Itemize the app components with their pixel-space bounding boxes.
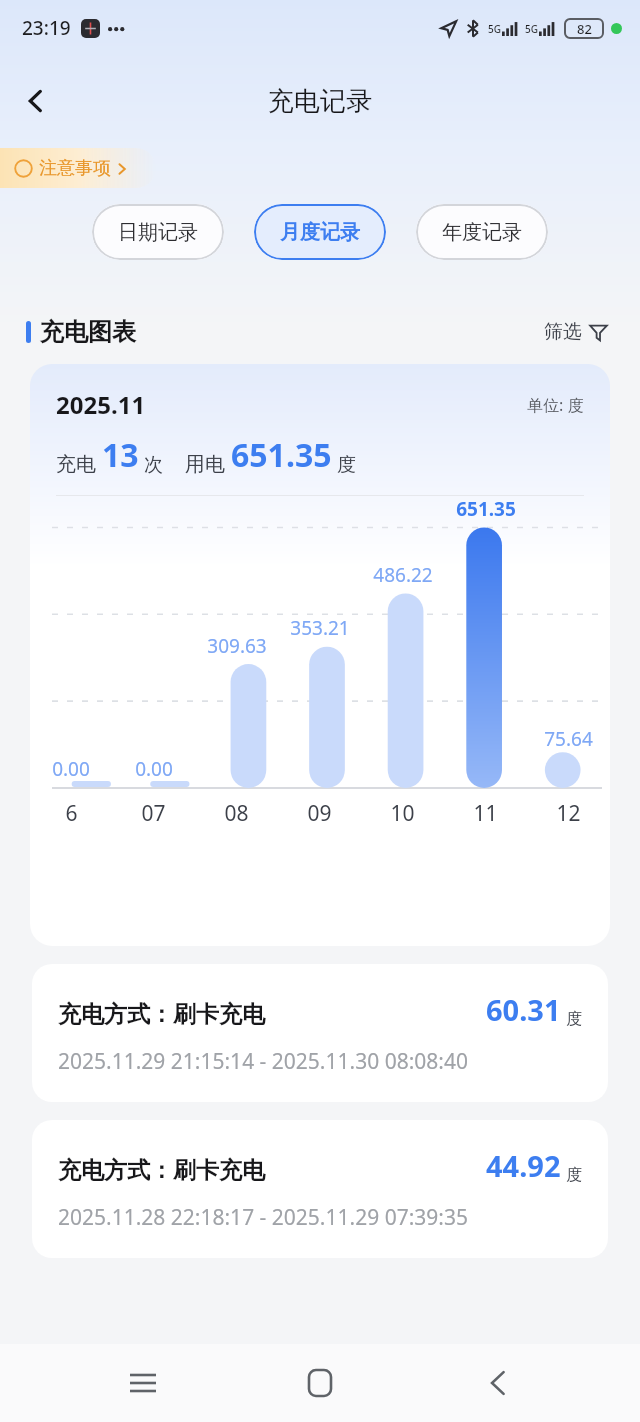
staticText: 充电方式：刷卡充电 (58, 1000, 265, 1029)
staticText: 309.63 (207, 633, 267, 659)
staticText: 2025.11.29 21:15:14 - 2025.11.30 08:08:4… (58, 1047, 468, 1076)
button[interactable]: Home (285, 1348, 355, 1418)
staticText: 充电方式：刷卡充电 (58, 1156, 265, 1185)
staticText: 度 (566, 1009, 582, 1029)
staticText: 单位: 度 (527, 394, 584, 416)
staticText: 注意事项 (39, 157, 111, 180)
staticText: 度 (337, 453, 356, 477)
staticText: 60.31 (486, 990, 561, 1029)
staticText: 6 (65, 799, 78, 828)
staticText: 353.21 (290, 615, 350, 641)
staticText: 2025.11.28 22:18:17 - 2025.11.29 07:39:3… (58, 1203, 468, 1232)
button[interactable]: 日期记录 (92, 204, 224, 260)
staticText: 度 (566, 1165, 582, 1185)
button[interactable]: 年度记录 (416, 204, 548, 260)
button[interactable]: Back (463, 1348, 533, 1418)
button[interactable]: Back (8, 73, 64, 129)
staticText: 0.00 (135, 756, 173, 782)
staticText: 筛选 (544, 320, 582, 344)
staticText: 年度记录 (442, 220, 522, 245)
staticText: 5G (525, 22, 538, 36)
staticText: 486.22 (373, 562, 433, 588)
staticText: 82 (577, 20, 592, 38)
button[interactable]: 充电方式：刷卡充电 (32, 964, 608, 1102)
staticText: 44.92 (486, 1146, 561, 1185)
staticText: 75.64 (544, 726, 593, 752)
staticText: 09 (307, 799, 332, 828)
staticText: 07 (141, 799, 166, 828)
staticText: 月度记录 (280, 220, 360, 245)
button[interactable]: 注意事项 (0, 148, 156, 188)
button[interactable]: Recent apps (108, 1348, 178, 1418)
staticText: 充电记录 (268, 85, 372, 118)
staticText: 12 (556, 799, 581, 828)
staticText: 0.00 (52, 756, 90, 782)
staticText: 5G (488, 22, 501, 36)
staticText: 651.35 (456, 496, 516, 522)
staticText: 用电 (185, 452, 225, 477)
staticText: 日期记录 (118, 220, 198, 245)
staticText: 2025.11 (56, 388, 146, 421)
staticText: 充电图表 (40, 317, 136, 347)
staticText: 23:19 (22, 15, 71, 41)
button[interactable]: 充电方式：刷卡充电 (32, 1120, 608, 1258)
staticText: 次 (144, 453, 163, 477)
staticText: 10 (390, 799, 415, 828)
button[interactable]: 2025.11 (30, 364, 610, 946)
staticText: 13 (102, 433, 139, 477)
staticText: 充电 (56, 452, 96, 477)
staticText: 11 (473, 799, 498, 828)
button[interactable]: 筛选 (538, 314, 614, 350)
staticText: 08 (224, 799, 249, 828)
staticText: 651.35 (231, 433, 332, 477)
button[interactable]: 月度记录 (254, 204, 386, 260)
